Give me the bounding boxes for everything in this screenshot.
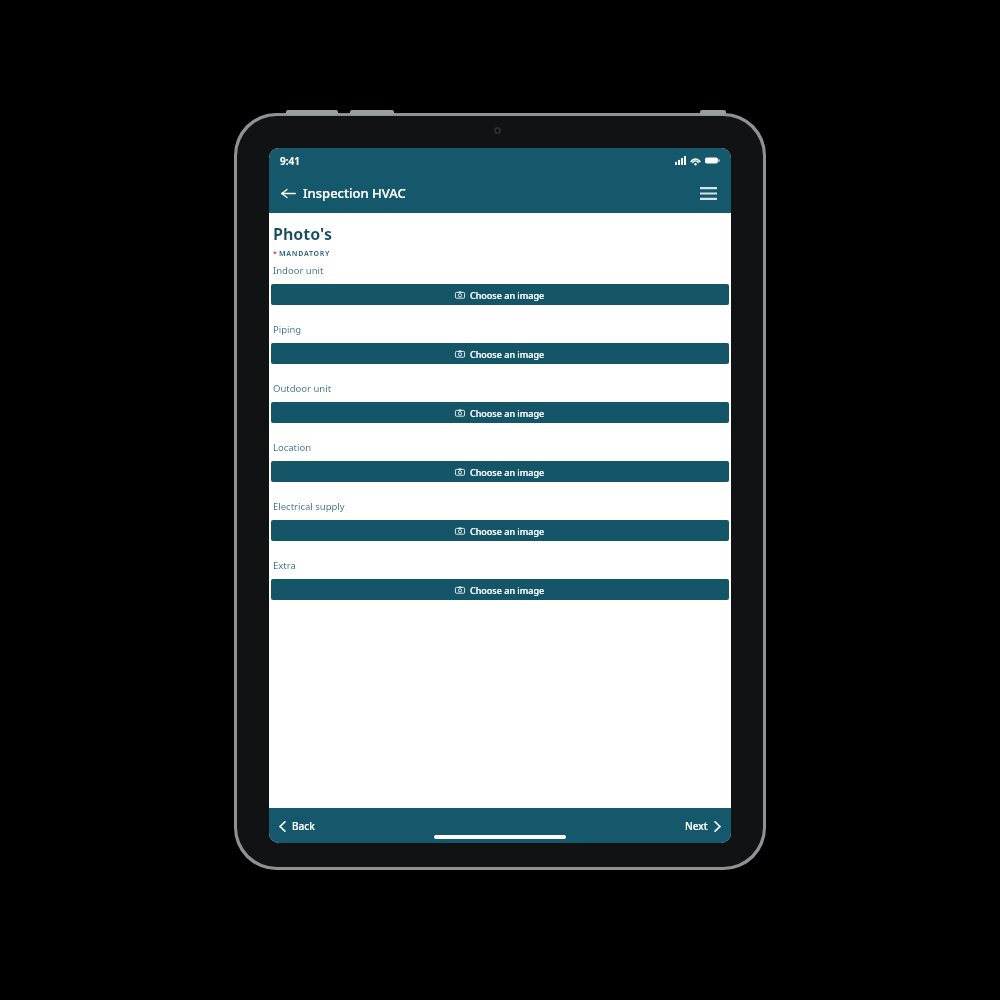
staticText: * [273, 249, 277, 259]
button[interactable]: Menu [696, 183, 721, 204]
button[interactable]: Choose an image [271, 284, 729, 305]
staticText: Choose an image [470, 466, 545, 478]
staticText: MANDATORY [279, 249, 331, 259]
button[interactable]: Choose an image [271, 402, 729, 423]
button[interactable]: Next [681, 815, 725, 837]
staticText: Photo's [273, 223, 332, 245]
button[interactable]: Choose an image [271, 579, 729, 600]
button[interactable]: Choose an image [271, 461, 729, 482]
button[interactable]: Choose an image [271, 343, 729, 364]
staticText: Outdoor unit [273, 382, 332, 395]
staticText: Back [292, 819, 315, 833]
staticText: Piping [273, 323, 302, 336]
button[interactable]: Choose an image [271, 520, 729, 541]
staticText: Choose an image [470, 407, 545, 419]
staticText: 9:41 [280, 154, 300, 168]
button[interactable]: Back [275, 815, 319, 837]
staticText: Extra [273, 559, 296, 572]
staticText: Choose an image [470, 584, 545, 596]
staticText: Choose an image [470, 525, 545, 537]
button[interactable]: Back [278, 183, 299, 204]
staticText: Location [273, 441, 312, 454]
staticText: Indoor unit [273, 264, 324, 277]
staticText: Choose an image [470, 348, 545, 360]
staticText: Inspection HVAC [303, 184, 406, 202]
staticText: Electrical supply [273, 500, 345, 513]
staticText: Next [685, 819, 708, 833]
staticText: Choose an image [470, 289, 545, 301]
